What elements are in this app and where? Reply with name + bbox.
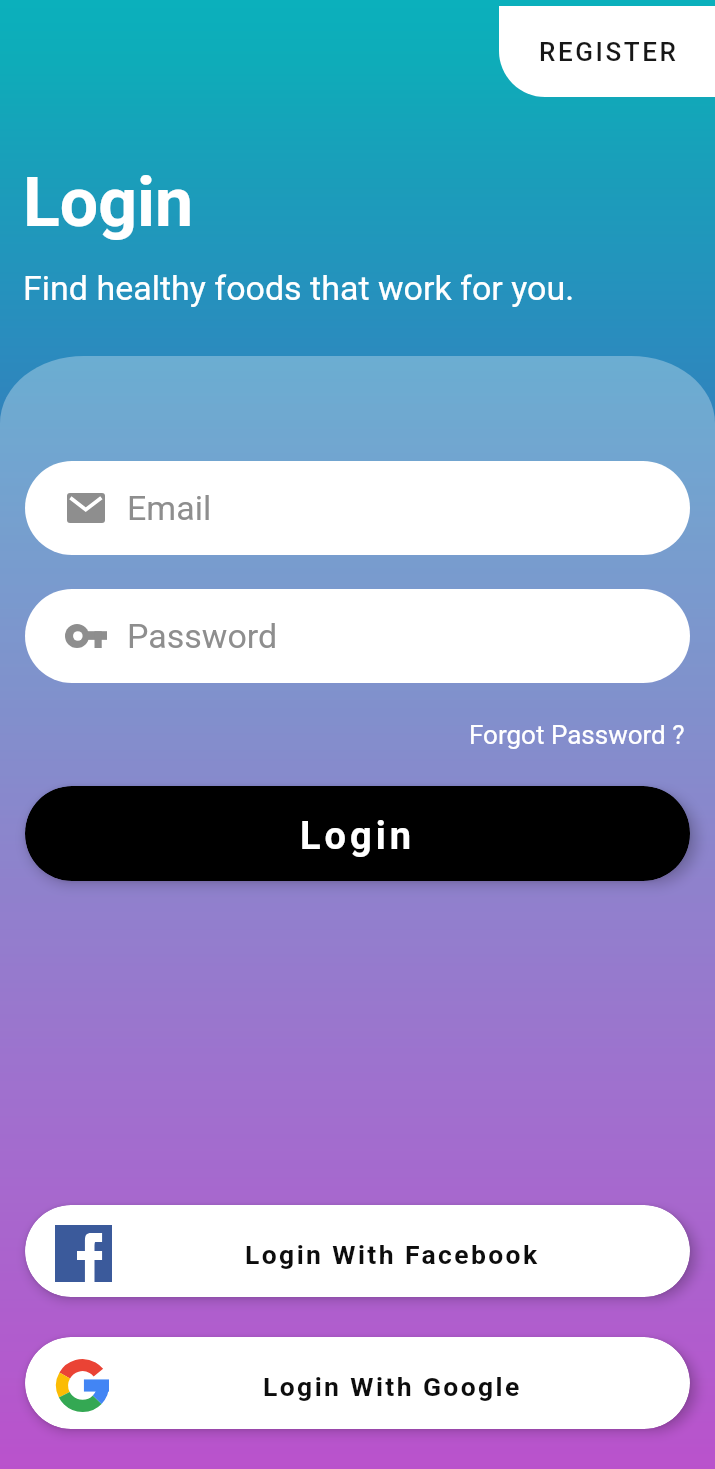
other: Password	[65, 624, 107, 648]
staticText: Find healthy foods that work for you.	[23, 268, 575, 308]
button[interactable]: Forgot Password ?	[469, 720, 690, 750]
staticText: Login With Google	[263, 1371, 522, 1402]
button[interactable]: Password	[25, 589, 690, 683]
staticText: Login	[300, 814, 416, 859]
staticText: Login With Facebook	[245, 1239, 540, 1270]
button[interactable]: Email	[25, 461, 690, 555]
button[interactable]: REGISTER	[499, 6, 715, 97]
button[interactable]: Login With Google	[25, 1337, 690, 1429]
staticText: Email	[127, 488, 212, 528]
staticText: Login	[23, 163, 194, 243]
staticText: Forgot Password ?	[469, 720, 685, 750]
other: Email	[67, 493, 105, 523]
other: Login With Google	[56, 1359, 109, 1412]
button[interactable]: Login	[25, 786, 690, 881]
other: Login With Facebook	[55, 1225, 112, 1282]
button[interactable]: Login With Facebook	[25, 1205, 690, 1297]
staticText: REGISTER	[539, 37, 679, 67]
staticText: Password	[127, 616, 278, 656]
